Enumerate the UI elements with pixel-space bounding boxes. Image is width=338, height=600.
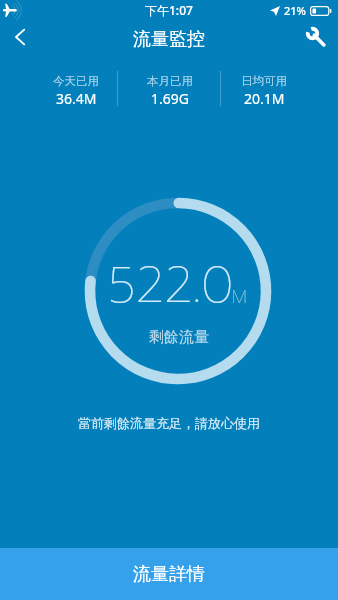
button[interactable]: 流量詳情 bbox=[0, 548, 338, 600]
staticText: 下午1:07 bbox=[145, 2, 193, 18]
button[interactable]: 日均可用 bbox=[217, 74, 311, 108]
staticText: 日均可用 bbox=[241, 74, 287, 88]
staticText: 今天已用 bbox=[53, 74, 99, 88]
staticText: 流量監控 bbox=[133, 28, 205, 51]
staticText: 522.0 bbox=[108, 247, 234, 323]
staticText: 剩餘流量 bbox=[149, 328, 209, 347]
button[interactable]: Back bbox=[0, 17, 40, 57]
staticText: 流量詳情 bbox=[133, 563, 205, 586]
staticText: 1.69G bbox=[151, 89, 189, 108]
button[interactable]: 本月已用 bbox=[123, 74, 217, 108]
staticText: 36.4M bbox=[56, 89, 97, 108]
staticText: 20.1M bbox=[244, 89, 285, 108]
staticText: 當前剩餘流量充足，請放心使用 bbox=[78, 415, 260, 431]
button[interactable]: 今天已用 bbox=[29, 74, 123, 108]
staticText: 21% bbox=[284, 3, 306, 18]
staticText: M bbox=[232, 283, 247, 310]
staticText: 本月已用 bbox=[147, 74, 193, 88]
button[interactable]: Settings bbox=[296, 17, 336, 57]
